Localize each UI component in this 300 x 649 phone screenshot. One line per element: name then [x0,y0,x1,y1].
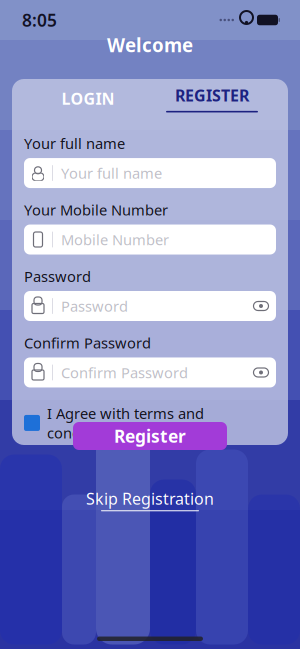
staticText: Password [24,266,91,286]
button[interactable]: Register [73,422,227,450]
button[interactable]: LOGIN [26,80,150,118]
staticText: Confirm Password [24,333,151,352]
button[interactable]: REGISTER [150,80,274,118]
staticText: Mobile Number [61,230,169,249]
staticText: Password [61,296,128,316]
button[interactable]: I Agree with terms and condition [24,403,276,442]
staticText: Your Mobile Number [24,200,168,219]
button[interactable]: Show password [246,291,276,321]
staticText: Skip Registration [86,488,214,509]
staticText: Your full name [24,134,125,153]
button[interactable]: Show password [246,357,276,387]
staticText: Confirm Password [61,363,188,382]
staticText: 8:05 [22,8,57,31]
staticText: I Agree with terms and condition [47,403,204,442]
staticText: LOGIN [61,88,114,109]
staticText: Welcome [107,33,193,57]
staticText: Your full name [61,163,162,183]
button[interactable]: Skip Registration [86,488,214,511]
staticText: Register [114,424,186,447]
staticText: REGISTER [175,85,249,106]
